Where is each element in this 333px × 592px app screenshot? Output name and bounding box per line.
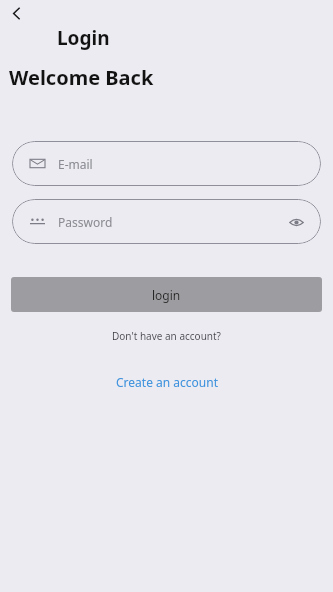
button[interactable]: Password [12, 199, 321, 244]
staticText: Welcome Back [9, 64, 154, 91]
staticText: E-mail [58, 156, 93, 172]
staticText: Password [58, 214, 113, 230]
staticText: Don't have an account? [112, 329, 221, 343]
button[interactable]: login [11, 277, 322, 312]
button[interactable]: E-mail [12, 141, 321, 186]
button[interactable]: Show password [285, 211, 307, 233]
button[interactable]: Back [1, 0, 31, 28]
button[interactable]: Create an account [110, 371, 224, 393]
staticText: login [152, 287, 181, 303]
staticText: Create an account [116, 374, 218, 390]
staticText: Login [57, 25, 110, 51]
